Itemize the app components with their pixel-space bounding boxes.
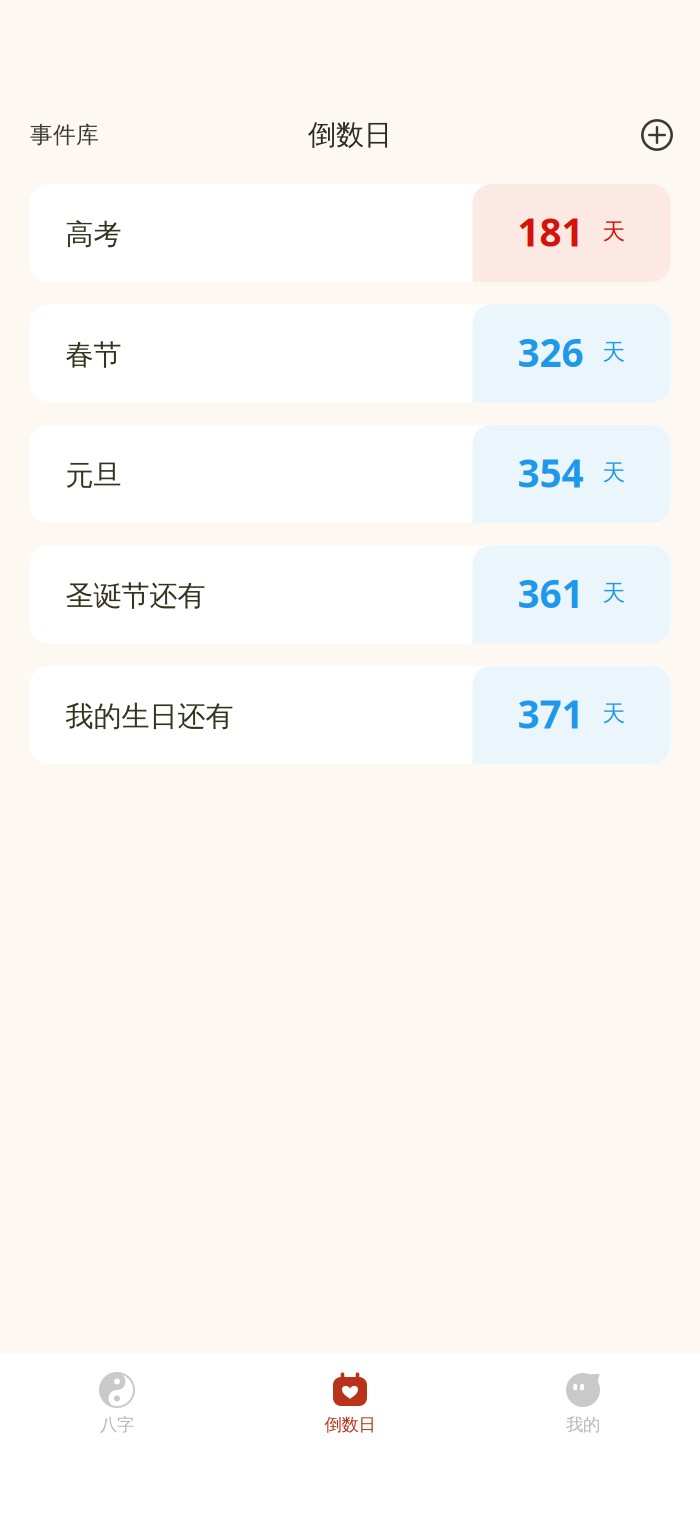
staticText: 天 <box>602 700 625 727</box>
staticText: 天 <box>602 218 625 245</box>
staticText: 事件库 <box>30 121 99 149</box>
button[interactable]: 354 <box>29 425 670 523</box>
staticText: 天 <box>602 338 625 366</box>
staticText: 天 <box>602 459 625 486</box>
staticText: 我的 <box>566 1414 600 1435</box>
staticText: 我的生日还有 <box>65 699 233 734</box>
button[interactable]: 八字 <box>0 1353 233 1515</box>
staticText: 高考 <box>65 217 121 252</box>
button[interactable]: Add event <box>635 113 679 157</box>
button[interactable]: 事件库 <box>22 113 107 157</box>
staticText: 圣诞节还有 <box>65 579 205 613</box>
staticText: 354 <box>517 447 583 498</box>
staticText: 春节 <box>65 338 121 372</box>
staticText: 326 <box>517 326 583 378</box>
staticText: 元旦 <box>65 458 121 493</box>
staticText: 倒数日 <box>308 118 392 152</box>
button[interactable]: 326 <box>29 304 670 402</box>
staticText: 371 <box>517 688 583 739</box>
staticText: 八字 <box>100 1414 134 1435</box>
button[interactable]: 361 <box>29 545 670 643</box>
staticText: 天 <box>602 579 625 607</box>
staticText: 倒数日 <box>324 1414 375 1435</box>
button[interactable]: 倒数日 <box>233 1353 466 1515</box>
button[interactable]: 181 <box>29 184 670 282</box>
staticText: 181 <box>517 206 583 257</box>
staticText: 361 <box>517 567 583 619</box>
button[interactable]: 我的 <box>466 1353 699 1515</box>
button[interactable]: 371 <box>29 666 670 764</box>
